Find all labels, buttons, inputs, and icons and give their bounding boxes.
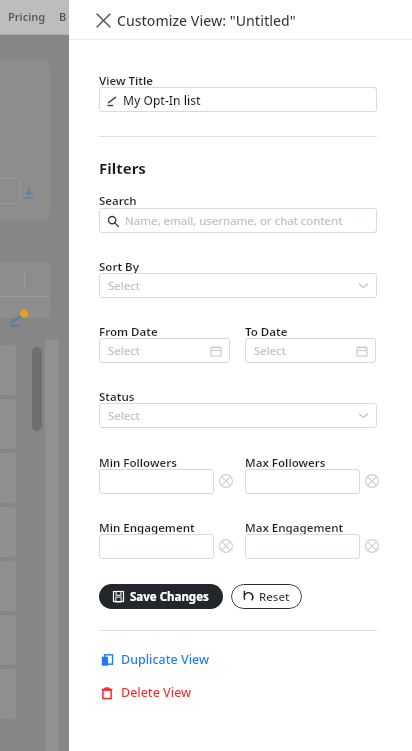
button[interactable]: My Opt-In list xyxy=(99,87,377,112)
staticText: Min Followers xyxy=(99,455,177,471)
staticText: Name, email, username, or chat content xyxy=(125,213,343,229)
staticText: Pricing xyxy=(8,9,46,24)
button[interactable]: Close xyxy=(91,8,115,32)
staticText: Filters xyxy=(99,158,146,178)
button[interactable]: Select xyxy=(99,273,377,298)
staticText: Select xyxy=(108,408,140,424)
staticText: B xyxy=(59,9,67,24)
staticText: Status xyxy=(99,389,135,405)
staticText: Max Engagement xyxy=(245,520,344,536)
staticText: Delete View xyxy=(121,684,192,701)
staticText: View Title xyxy=(99,73,153,89)
button[interactable] xyxy=(99,534,214,559)
button[interactable] xyxy=(99,469,214,494)
button[interactable]: Duplicate View xyxy=(99,648,212,671)
staticText: Min Engagement xyxy=(99,520,195,536)
button[interactable]: Name, email, username, or chat content xyxy=(99,208,377,233)
button[interactable]: Clear xyxy=(219,539,233,553)
staticText: To Date xyxy=(245,324,288,340)
staticText: Sort By xyxy=(99,259,139,275)
button[interactable] xyxy=(245,469,360,494)
staticText: Search xyxy=(99,193,137,209)
button[interactable]: Reset xyxy=(231,584,302,609)
staticText: My Opt-In list xyxy=(123,92,201,108)
button[interactable]: Select xyxy=(245,338,376,363)
staticText: Select xyxy=(254,343,286,359)
staticText: Max Followers xyxy=(245,455,326,471)
staticText: Save Changes xyxy=(130,589,209,605)
staticText: Customize View: "Untitled" xyxy=(117,11,296,30)
staticText: Select xyxy=(108,278,140,294)
button[interactable]: Select xyxy=(99,338,230,363)
button[interactable]: Select xyxy=(99,403,377,428)
staticText: Duplicate View xyxy=(121,651,210,668)
button[interactable]: Delete View xyxy=(99,681,194,704)
button[interactable]: Clear xyxy=(365,474,379,488)
staticText: Reset xyxy=(259,589,290,605)
button[interactable]: Clear xyxy=(219,474,233,488)
staticText: Select xyxy=(108,343,140,359)
button[interactable]: Clear xyxy=(365,539,379,553)
button[interactable] xyxy=(245,534,360,559)
staticText: From Date xyxy=(99,324,158,340)
button[interactable]: Save Changes xyxy=(99,584,223,609)
